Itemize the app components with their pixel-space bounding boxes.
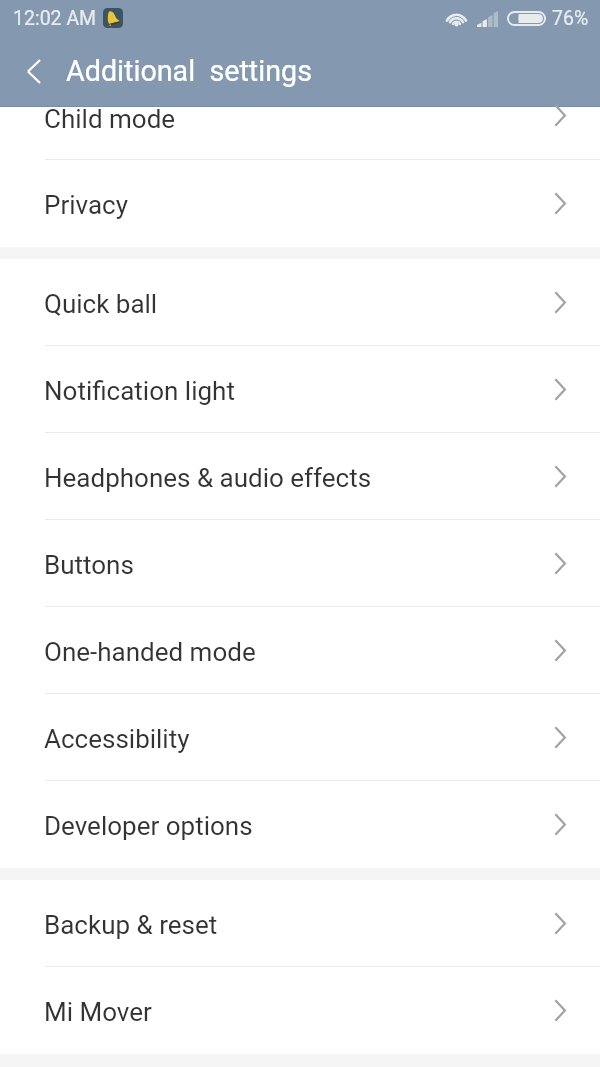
staticText: Backup & reset <box>44 910 218 940</box>
staticText: Accessibility <box>44 724 190 754</box>
staticText: Child mode <box>44 104 176 134</box>
staticText: Notification light <box>44 376 235 406</box>
staticText: Headphones & audio effects <box>44 463 372 493</box>
staticText: Additional settings <box>66 54 312 88</box>
staticText: One-handed mode <box>44 637 256 667</box>
button[interactable]: One-handed mode <box>0 607 600 694</box>
button[interactable]: Notification light <box>0 346 600 433</box>
button[interactable]: Mi Mover <box>0 967 600 1054</box>
staticText: 76% <box>552 7 589 30</box>
button[interactable]: Privacy <box>0 160 600 247</box>
button[interactable]: Developer options <box>0 781 600 868</box>
staticText: Mi Mover <box>44 997 152 1027</box>
button[interactable]: Accessibility <box>0 694 600 781</box>
button[interactable]: Child mode <box>0 107 600 160</box>
staticText: Privacy <box>44 190 128 220</box>
staticText: Developer options <box>44 811 253 841</box>
staticText: Quick ball <box>44 289 158 319</box>
staticText: Buttons <box>44 550 134 580</box>
button[interactable]: Backup & reset <box>0 880 600 967</box>
button[interactable]: Quick ball <box>0 259 600 346</box>
button[interactable]: Buttons <box>0 520 600 607</box>
button[interactable]: Back <box>6 44 62 100</box>
button[interactable]: Headphones & audio effects <box>0 433 600 520</box>
staticText: 12:02 AM <box>13 7 97 30</box>
